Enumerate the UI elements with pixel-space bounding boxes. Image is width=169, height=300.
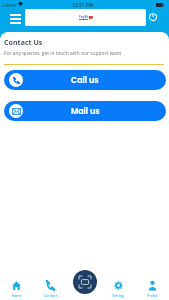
staticText: 12:11 PM xyxy=(72,2,93,9)
staticText: Call us xyxy=(71,75,99,86)
button[interactable]: Scan xyxy=(73,270,97,294)
staticText: Setting xyxy=(112,293,124,298)
button[interactable]: Contact xyxy=(33,266,67,300)
staticText: PayMe xyxy=(79,15,89,19)
button[interactable]: Setting xyxy=(101,266,135,300)
button[interactable]: Profile xyxy=(135,266,169,300)
button[interactable]: Call us xyxy=(4,70,166,90)
staticText: Contact xyxy=(44,293,57,298)
button[interactable]: Power xyxy=(146,10,160,24)
staticText: For any queries, get in touch with our s… xyxy=(4,50,122,57)
button[interactable]: Mail us xyxy=(4,101,166,121)
button[interactable]: Menu xyxy=(6,10,24,28)
staticText: Contact Us xyxy=(4,37,43,47)
staticText: Profile xyxy=(147,293,158,298)
button[interactable]: Home xyxy=(0,266,33,300)
staticText: Carrier xyxy=(2,2,17,8)
staticText: Home xyxy=(11,293,22,298)
staticText: Mail us xyxy=(71,106,100,117)
